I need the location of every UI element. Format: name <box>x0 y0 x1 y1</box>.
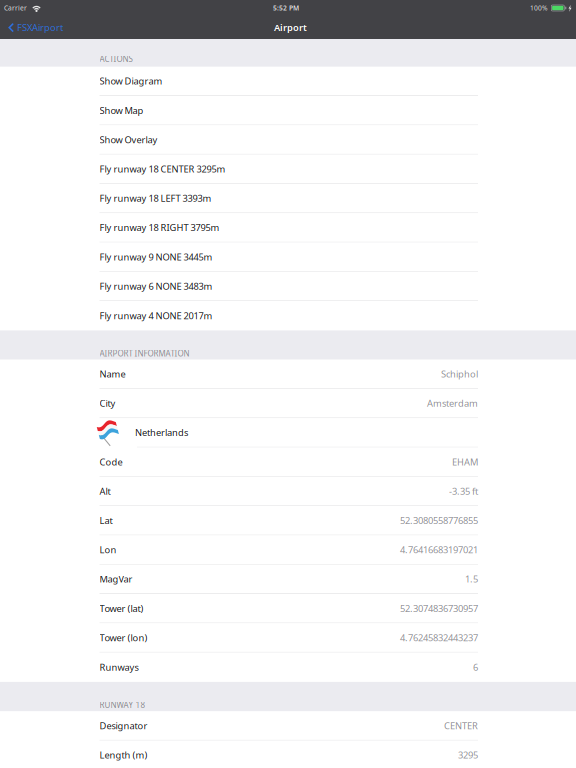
button[interactable]: Lat <box>0 506 576 535</box>
staticText: Fly runway 18 LEFT 3393m <box>99 192 211 204</box>
staticText: Length (m) <box>99 749 147 761</box>
staticText: Show Diagram <box>99 75 162 87</box>
button[interactable]: Fly runway 18 CENTER 3295m <box>0 155 576 184</box>
button[interactable]: Lon <box>0 535 576 565</box>
staticText: -3.35 ft <box>449 485 478 497</box>
button[interactable]: Name <box>0 360 576 389</box>
staticText: Amsterdam <box>427 397 478 409</box>
staticText: Code <box>99 456 122 468</box>
staticText: Show Overlay <box>99 133 157 146</box>
button[interactable]: Length (m) <box>0 741 576 768</box>
staticText: Lon <box>99 543 116 556</box>
staticText: FSXAirport <box>17 21 63 34</box>
button[interactable]: Fly runway 4 NONE 2017m <box>0 301 576 330</box>
staticText: Carrier <box>4 4 27 12</box>
staticText: Airport <box>274 21 307 34</box>
staticText: Alt <box>99 485 110 497</box>
staticText: 4.76245832443237 <box>400 631 478 644</box>
staticText: Fly runway 18 CENTER 3295m <box>99 163 225 175</box>
button[interactable]: Netherlands <box>0 418 576 447</box>
button[interactable]: Show Map <box>0 96 576 125</box>
button[interactable]: Designator <box>0 711 576 741</box>
button[interactable]: Fly runway 6 NONE 3483m <box>0 272 576 301</box>
staticText: Netherlands <box>135 426 188 439</box>
staticText: RUNWAY 18 <box>99 700 145 710</box>
button[interactable]: Fly runway 18 LEFT 3393m <box>0 184 576 213</box>
staticText: Schiphol <box>441 368 478 380</box>
staticText: AIRPORT INFORMATION <box>99 348 189 359</box>
staticText: 52.3080558776855 <box>400 514 478 527</box>
button[interactable]: Fly runway 18 RIGHT 3795m <box>0 213 576 242</box>
staticText: Tower (lat) <box>99 602 143 614</box>
staticText: City <box>99 397 115 409</box>
staticText: Fly runway 9 NONE 3445m <box>99 251 212 263</box>
button[interactable]: Runways <box>0 653 576 682</box>
button[interactable]: Tower (lon) <box>0 623 576 653</box>
staticText: CENTER <box>444 719 478 732</box>
staticText: Show Map <box>99 104 143 116</box>
button[interactable]: Code <box>0 447 576 477</box>
button[interactable]: MagVar <box>0 565 576 594</box>
staticText: 6 <box>473 661 478 673</box>
button[interactable]: Alt <box>0 477 576 506</box>
staticText: Fly runway 6 NONE 3483m <box>99 280 212 292</box>
staticText: 52.3074836730957 <box>400 602 478 614</box>
button[interactable]: Tower (lat) <box>0 594 576 623</box>
staticText: Lat <box>99 514 112 527</box>
staticText: Fly runway 4 NONE 2017m <box>99 310 212 322</box>
staticText: 100% <box>530 4 548 12</box>
staticText: 3295 <box>458 749 478 761</box>
staticText: Designator <box>99 719 147 732</box>
staticText: EHAM <box>452 456 478 468</box>
staticText: 4.76416683197021 <box>400 543 478 556</box>
staticText: 5:52 PM <box>273 4 299 12</box>
staticText: Name <box>99 368 125 380</box>
button[interactable]: City <box>0 389 576 418</box>
staticText: Tower (lon) <box>99 631 147 644</box>
staticText: ACTIONS <box>99 54 132 64</box>
button[interactable]: Show Overlay <box>0 125 576 155</box>
staticText: Fly runway 18 RIGHT 3795m <box>99 221 219 234</box>
staticText: MagVar <box>99 573 132 585</box>
button[interactable]: Fly runway 9 NONE 3445m <box>0 242 576 272</box>
button[interactable]: FSXAirport <box>0 16 69 39</box>
staticText: 1.5 <box>465 573 478 585</box>
button[interactable]: Show Diagram <box>0 67 576 96</box>
staticText: Runways <box>99 661 138 673</box>
